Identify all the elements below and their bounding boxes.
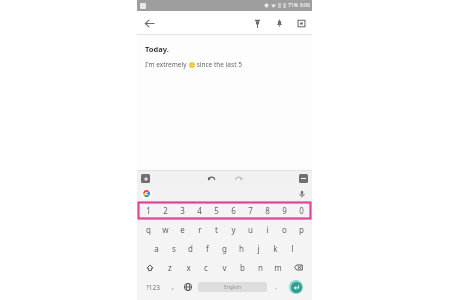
button[interactable]: Hide keyboard bbox=[299, 174, 308, 183]
staticText: a bbox=[154, 243, 159, 254]
button[interactable]: 4 bbox=[191, 201, 208, 220]
staticText: f bbox=[206, 243, 209, 254]
button[interactable]: ?123 bbox=[140, 277, 166, 297]
button[interactable]: f bbox=[199, 239, 216, 258]
button[interactable]: 8 bbox=[259, 201, 276, 220]
button[interactable]: s bbox=[165, 239, 182, 258]
button[interactable]: Enter bbox=[283, 277, 309, 297]
button[interactable]: q bbox=[139, 220, 157, 239]
staticText: n bbox=[258, 262, 263, 273]
button[interactable]: Google bbox=[141, 188, 152, 199]
button[interactable]: Backspace bbox=[287, 258, 310, 277]
staticText: x bbox=[186, 262, 191, 273]
button[interactable]: Add bbox=[141, 174, 150, 183]
button[interactable]: Redo bbox=[233, 173, 244, 184]
staticText: 8 bbox=[265, 205, 270, 216]
staticText: c bbox=[204, 262, 208, 273]
button[interactable]: 9 bbox=[276, 201, 293, 220]
button[interactable]: n bbox=[251, 258, 269, 277]
button[interactable]: c bbox=[197, 258, 215, 277]
staticText: since the last 5 bbox=[195, 60, 242, 69]
staticText: q bbox=[146, 224, 151, 235]
button[interactable]: Back bbox=[141, 15, 157, 31]
button[interactable]: i bbox=[259, 220, 276, 239]
staticText: b bbox=[240, 262, 245, 273]
button[interactable]: p bbox=[293, 220, 310, 239]
button[interactable]: Reminder bbox=[272, 16, 286, 30]
button[interactable]: l bbox=[284, 239, 301, 258]
staticText: s bbox=[172, 243, 176, 254]
staticText: I'm extremely bbox=[145, 60, 189, 69]
staticText: v bbox=[222, 262, 227, 273]
staticText: 1 bbox=[146, 205, 151, 216]
staticText: z bbox=[168, 262, 172, 273]
button[interactable]: h bbox=[233, 239, 250, 258]
staticText: h bbox=[239, 243, 244, 254]
staticText: l bbox=[291, 243, 294, 254]
button[interactable]: Pin bbox=[250, 16, 264, 30]
staticText: 5 bbox=[214, 205, 219, 216]
staticText: English bbox=[224, 284, 242, 291]
staticText: o bbox=[282, 224, 287, 235]
staticText: 2 bbox=[163, 205, 168, 216]
staticText: 0 bbox=[299, 205, 304, 216]
button[interactable]: x bbox=[179, 258, 197, 277]
button[interactable]: j bbox=[250, 239, 267, 258]
button[interactable]: . bbox=[269, 277, 283, 297]
button[interactable]: 5 bbox=[208, 201, 225, 220]
button[interactable]: , bbox=[166, 277, 180, 297]
staticText: 4 bbox=[197, 205, 202, 216]
staticText: Today. bbox=[145, 44, 169, 54]
staticText: t bbox=[215, 224, 218, 235]
button[interactable]: 1 bbox=[139, 201, 157, 220]
staticText: , bbox=[172, 282, 174, 292]
staticText: w bbox=[162, 224, 169, 235]
button[interactable]: u bbox=[242, 220, 259, 239]
button[interactable]: o bbox=[276, 220, 293, 239]
button[interactable]: t bbox=[208, 220, 225, 239]
staticText: . bbox=[275, 282, 277, 292]
staticText: p bbox=[299, 224, 304, 235]
button[interactable]: z bbox=[161, 258, 179, 277]
button[interactable]: Change language bbox=[180, 277, 196, 297]
staticText: y bbox=[231, 224, 236, 235]
button[interactable]: Shift bbox=[139, 258, 161, 277]
button[interactable]: e bbox=[174, 220, 191, 239]
button[interactable]: v bbox=[215, 258, 233, 277]
button[interactable]: Undo bbox=[206, 173, 217, 184]
button[interactable]: k bbox=[267, 239, 284, 258]
staticText: 6 bbox=[231, 205, 236, 216]
button[interactable]: d bbox=[182, 239, 199, 258]
button[interactable]: y bbox=[225, 220, 242, 239]
button[interactable]: 0 bbox=[293, 201, 310, 220]
staticText: m bbox=[274, 262, 282, 273]
button[interactable]: 2 bbox=[157, 201, 174, 220]
button[interactable]: m bbox=[269, 258, 287, 277]
staticText: 6:09 bbox=[300, 2, 310, 9]
staticText: g bbox=[222, 243, 227, 254]
staticText: 3 bbox=[180, 205, 185, 216]
button[interactable]: 7 bbox=[242, 201, 259, 220]
button[interactable]: a bbox=[148, 239, 165, 258]
button[interactable]: Voice input bbox=[296, 188, 307, 199]
staticText: 71% bbox=[288, 2, 298, 9]
button[interactable]: English bbox=[198, 282, 267, 292]
staticText: i bbox=[266, 224, 269, 235]
staticText: ?123 bbox=[146, 283, 160, 292]
button[interactable]: r bbox=[191, 220, 208, 239]
button[interactable]: Archive bbox=[294, 16, 308, 30]
staticText: u bbox=[248, 224, 253, 235]
button[interactable]: w bbox=[157, 220, 174, 239]
staticText: k bbox=[273, 243, 278, 254]
staticText: e bbox=[180, 224, 185, 235]
staticText: 7 bbox=[248, 205, 253, 216]
button[interactable]: g bbox=[216, 239, 233, 258]
staticText: r bbox=[198, 224, 202, 235]
button[interactable]: 6 bbox=[225, 201, 242, 220]
button[interactable]: 3 bbox=[174, 201, 191, 220]
staticText: j bbox=[257, 243, 260, 254]
staticText: d bbox=[188, 243, 193, 254]
staticText: 9 bbox=[282, 205, 287, 216]
button[interactable]: b bbox=[233, 258, 251, 277]
